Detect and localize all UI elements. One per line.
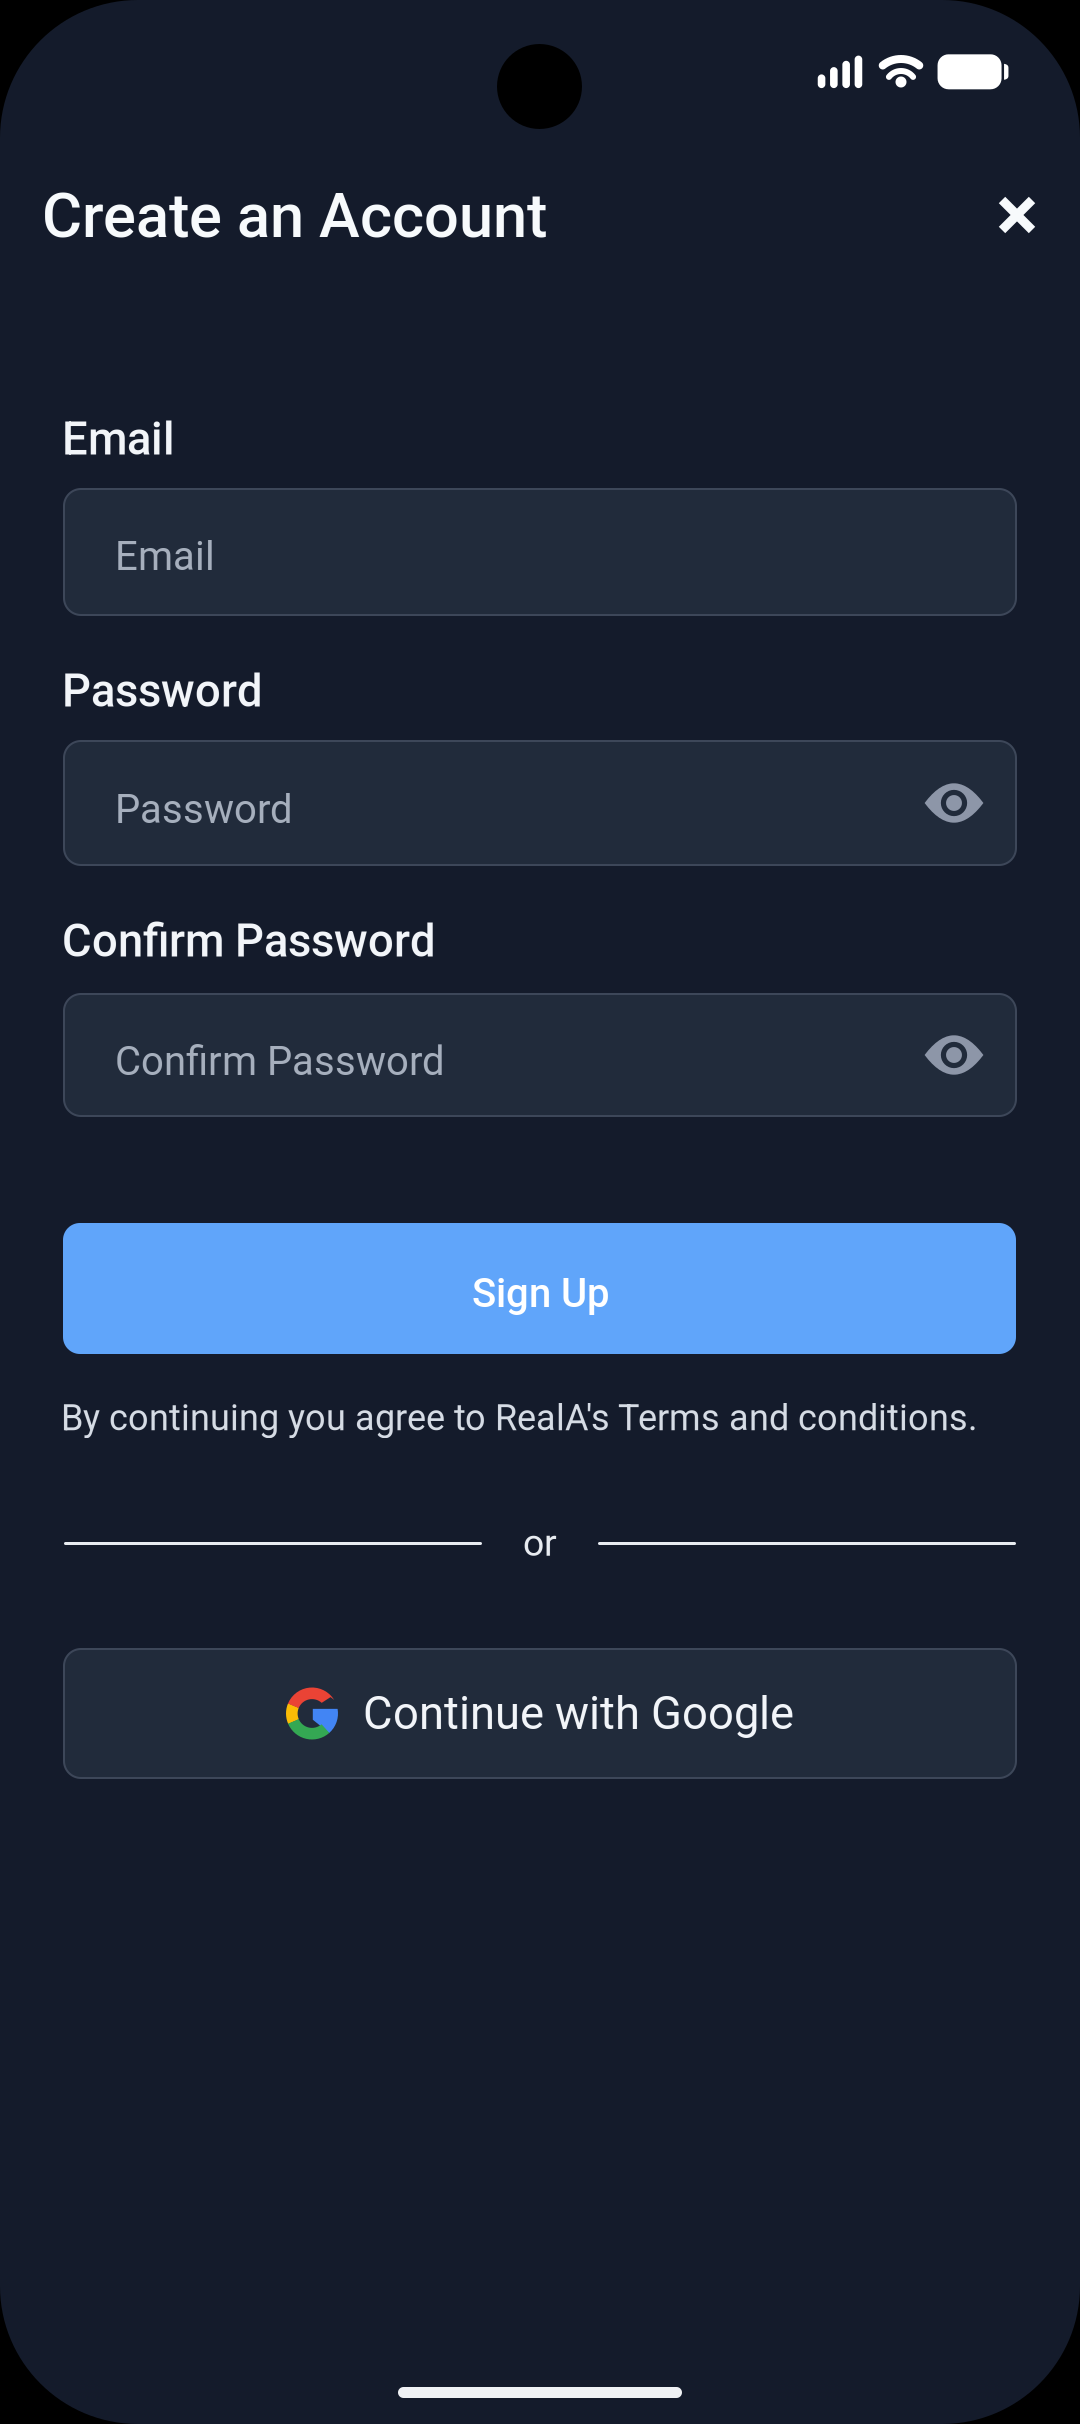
staticText: Email [115, 533, 215, 580]
button[interactable]: Close [995, 193, 1039, 237]
button[interactable]: Password [64, 741, 1016, 865]
staticText: Create an Account [42, 180, 547, 252]
button[interactable]: Continue with Google [64, 1649, 1016, 1778]
button[interactable]: Sign Up [63, 1223, 1016, 1354]
staticText: By continuing you agree to RealA's Terms… [61, 1397, 977, 1439]
staticText: Confirm Password [115, 1038, 445, 1085]
staticText: Sign Up [472, 1270, 609, 1317]
staticText: Email [62, 412, 175, 465]
button[interactable]: Confirm Password [64, 994, 1016, 1116]
button[interactable]: Show password [925, 783, 983, 823]
staticText: or [523, 1521, 557, 1565]
staticText: Password [62, 664, 263, 717]
staticText: Password [115, 786, 293, 833]
staticText: Confirm Password [62, 914, 436, 967]
button[interactable]: Show confirm password [925, 1035, 983, 1075]
staticText: Continue with Google [363, 1687, 794, 1740]
button[interactable]: Email [64, 489, 1016, 615]
